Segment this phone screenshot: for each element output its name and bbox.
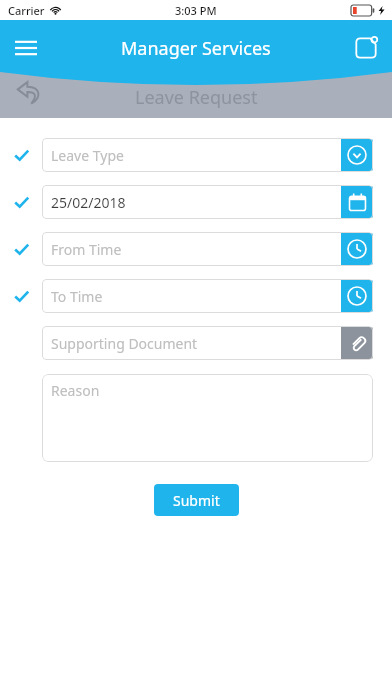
button[interactable]: Pick to time <box>341 280 373 312</box>
staticText: Leave Request <box>135 85 258 110</box>
staticText: Manager Services <box>121 36 271 61</box>
button[interactable]: Back <box>8 70 52 114</box>
button[interactable]: Attach supporting document <box>341 327 373 359</box>
staticText: Reason <box>51 381 100 400</box>
staticText: Supporting Document <box>51 334 198 353</box>
button[interactable]: To Time <box>42 279 373 313</box>
button[interactable]: Pick date <box>341 186 373 218</box>
button[interactable]: Supporting Document <box>42 326 373 360</box>
staticText: From Time <box>51 240 122 259</box>
button[interactable]: Submit <box>154 484 239 516</box>
button[interactable]: Reason <box>42 374 373 462</box>
button[interactable]: Menu <box>4 26 48 70</box>
staticText: Submit <box>173 491 220 510</box>
staticText: Carrier <box>8 3 45 18</box>
staticText: To Time <box>51 287 103 306</box>
staticText: Leave Type <box>51 146 124 165</box>
staticText: 25/02/2018 <box>51 193 126 212</box>
staticText: 3:03 PM <box>175 3 217 18</box>
button[interactable]: Select leave type <box>341 139 373 171</box>
button[interactable]: Leave Type <box>42 138 373 172</box>
button[interactable]: 25/02/2018 <box>42 185 373 219</box>
button[interactable]: New document <box>344 26 388 70</box>
button[interactable]: Pick from time <box>341 233 373 265</box>
button[interactable]: From Time <box>42 232 373 266</box>
